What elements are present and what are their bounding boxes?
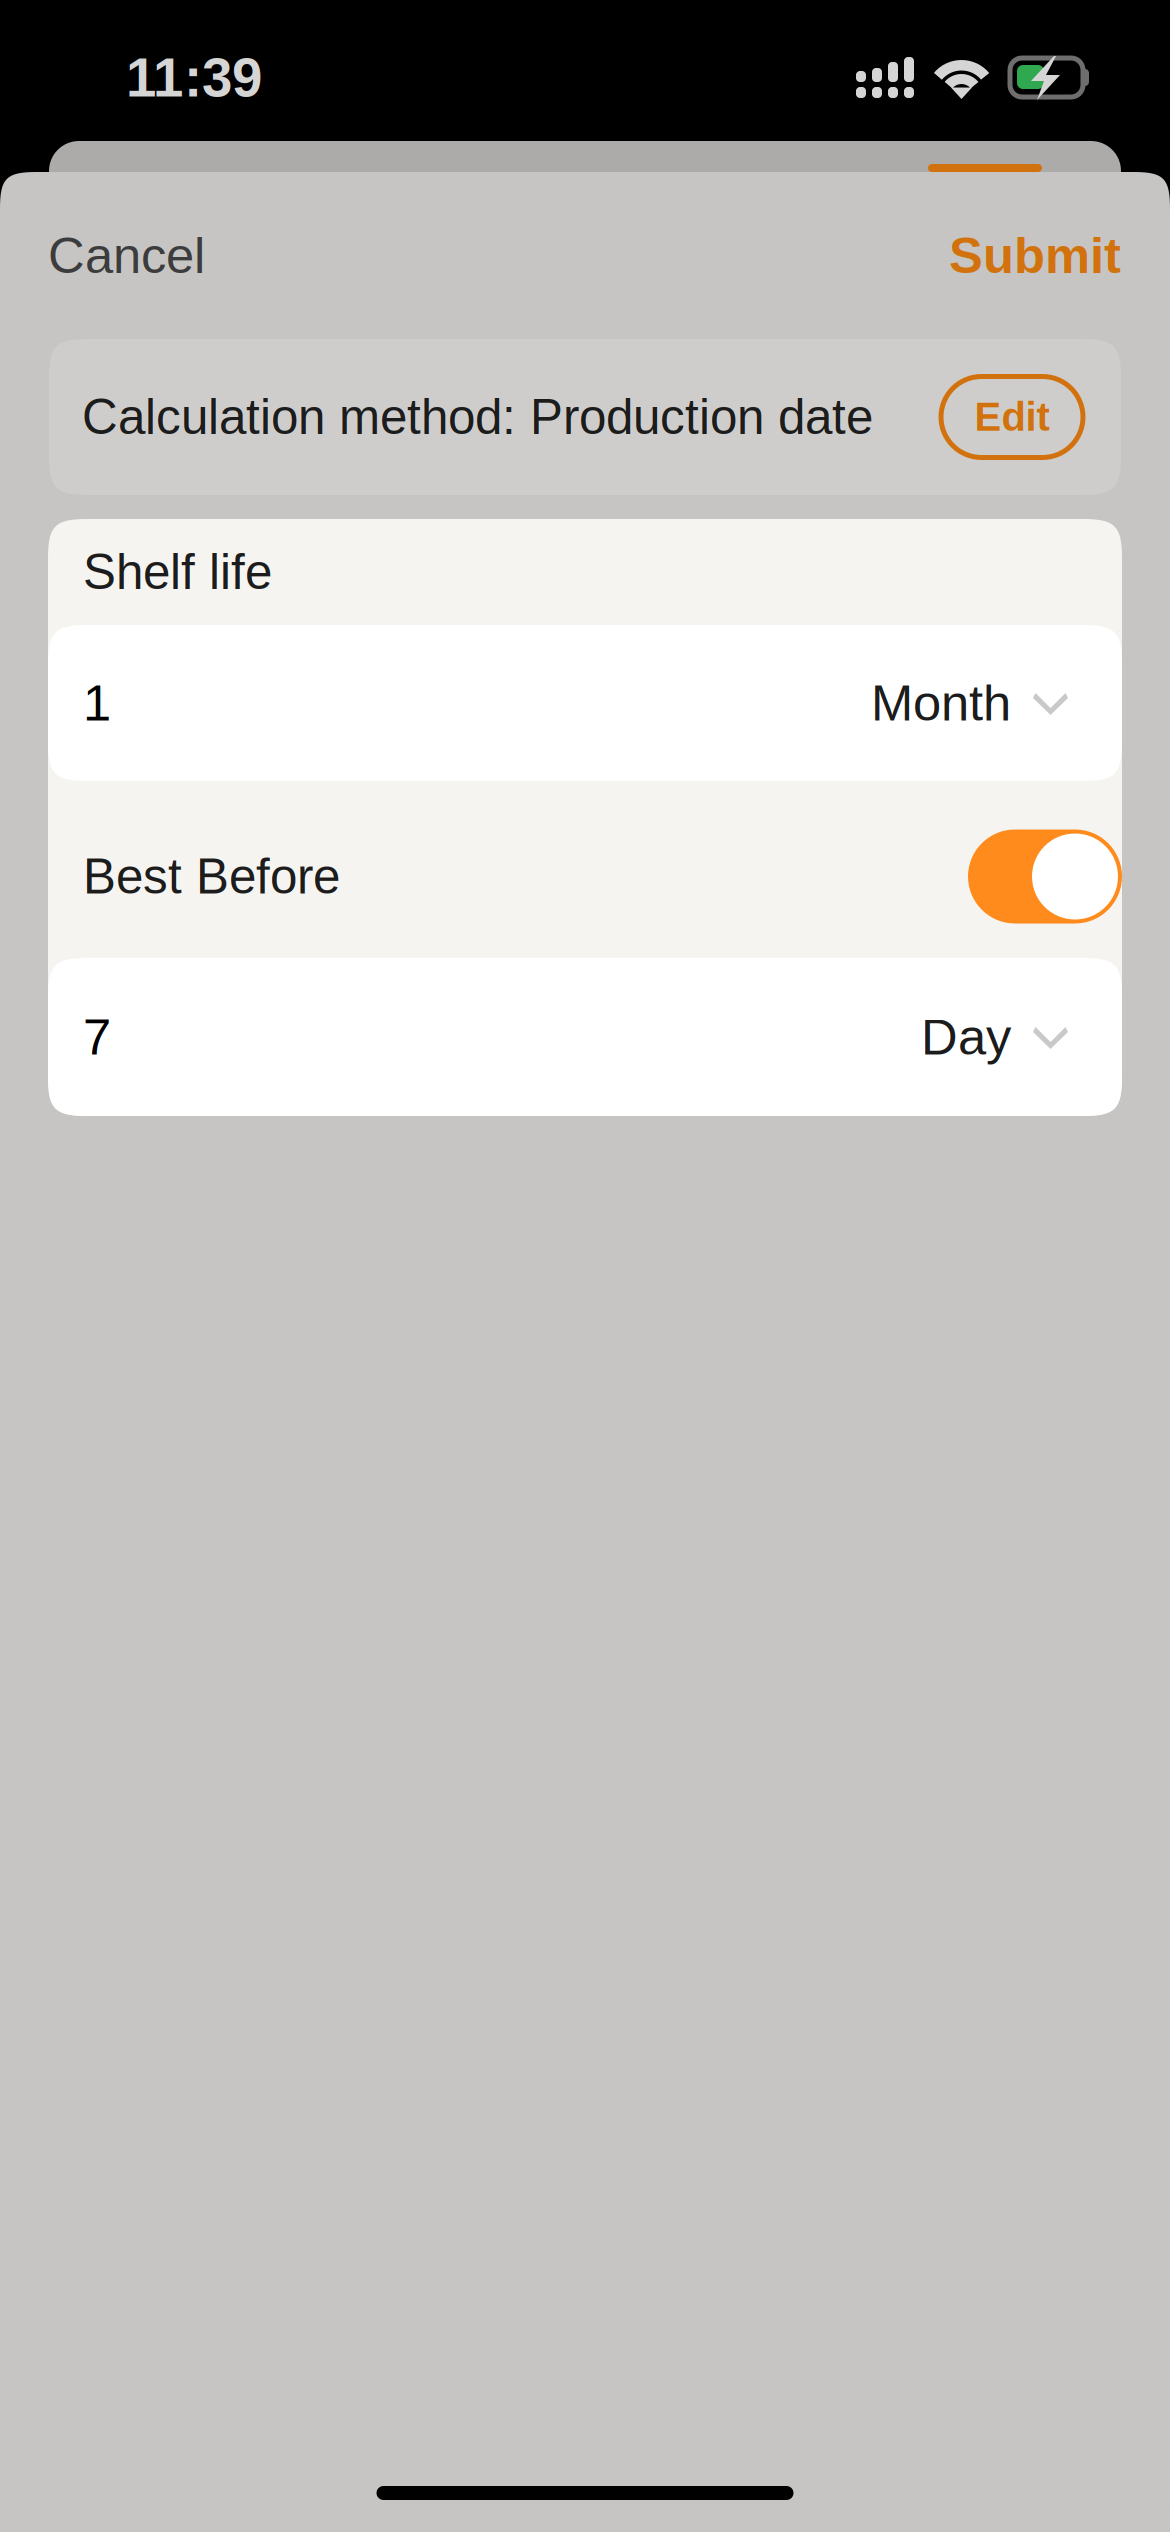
staticText: Best Before — [83, 849, 340, 904]
button[interactable]: 1 — [48, 625, 1122, 781]
staticText: 1 — [83, 675, 111, 731]
button[interactable]: Best Before — [48, 781, 1122, 958]
staticText: 11:39 — [126, 47, 262, 108]
staticText: Shelf life — [83, 544, 272, 599]
button[interactable]: Edit — [941, 376, 1083, 457]
staticText: Cancel — [48, 227, 205, 284]
button[interactable]: Submit — [949, 205, 1121, 306]
staticText: Submit — [949, 227, 1121, 284]
staticText: Calculation method: Production date — [82, 389, 873, 444]
button[interactable]: Cancel — [48, 205, 205, 306]
staticText: 7 — [83, 1009, 111, 1065]
staticText: Day — [921, 1009, 1011, 1065]
button[interactable]: 7 — [48, 958, 1122, 1116]
staticText: Month — [871, 675, 1011, 731]
staticText: Edit — [974, 395, 1049, 439]
